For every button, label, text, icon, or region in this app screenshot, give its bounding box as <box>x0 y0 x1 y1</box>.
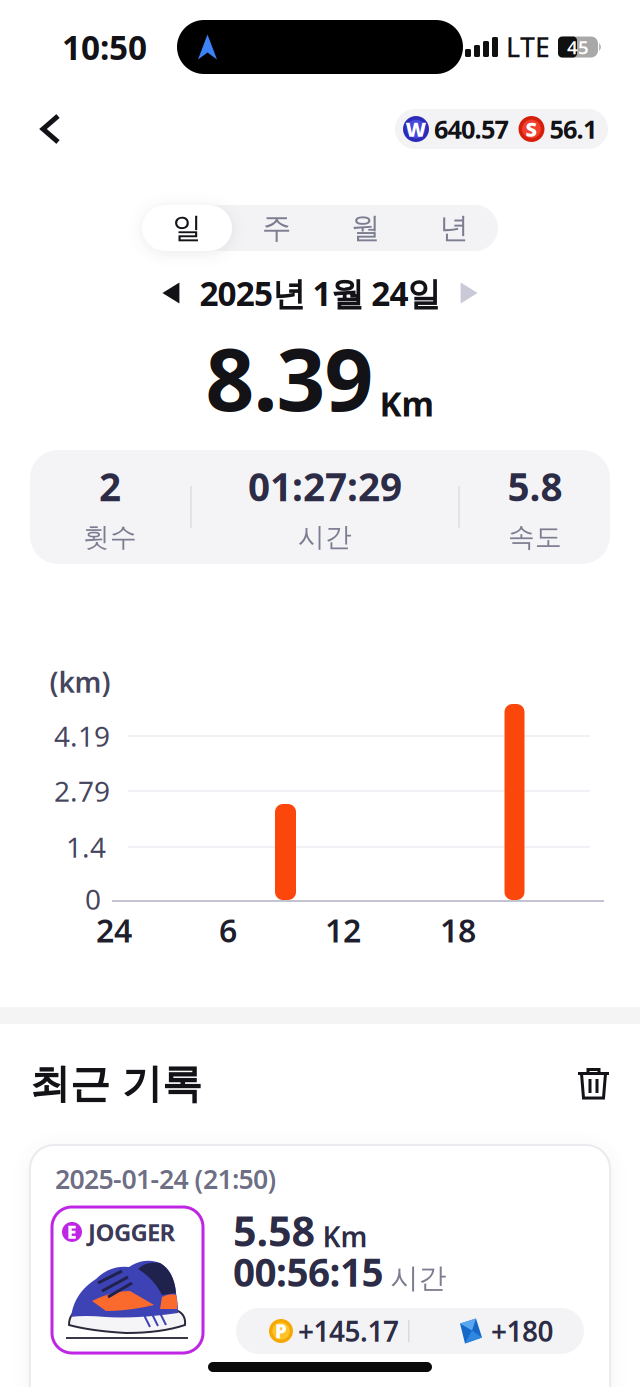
staticText: 2025-01-24 (21:50) <box>55 1161 276 1196</box>
button[interactable]: Wallet balance <box>395 109 608 149</box>
staticText: 6 <box>219 909 237 951</box>
button[interactable]: 년 <box>410 205 498 251</box>
staticText: 월 <box>351 210 380 246</box>
staticText: 00:56:15 <box>233 1246 383 1297</box>
staticText: 640.57 <box>434 112 508 146</box>
staticText: 12 <box>325 909 361 951</box>
staticText: 2.79 <box>54 772 110 810</box>
button[interactable]: 주 <box>232 205 321 251</box>
staticText: S <box>525 116 537 142</box>
staticText: 0 <box>85 880 101 918</box>
staticText: Km <box>322 1218 367 1255</box>
staticText: W <box>405 116 426 142</box>
staticText: 4.19 <box>54 717 110 755</box>
staticText: 45 <box>567 35 589 59</box>
staticText: Km <box>379 381 434 426</box>
button[interactable]: Back <box>0 114 82 144</box>
staticText: 시간 <box>390 1261 446 1295</box>
staticText: 2 <box>99 460 121 512</box>
staticText: (km) <box>49 663 110 701</box>
staticText: 최근 기록 <box>30 1059 202 1108</box>
staticText: 시간 <box>298 521 352 554</box>
staticText: 5.8 <box>507 460 562 512</box>
staticText: 18 <box>440 909 476 951</box>
staticText: +145.17 <box>298 1312 399 1350</box>
button[interactable]: Next day <box>461 282 478 303</box>
staticText: 횟수 <box>83 521 137 554</box>
staticText: 56.1 <box>549 112 597 146</box>
button[interactable]: 일 <box>142 205 232 251</box>
staticText: 년 <box>439 210 468 246</box>
staticText: 속도 <box>508 521 562 554</box>
button[interactable]: Previous day <box>162 282 179 303</box>
staticText: LTE <box>506 29 550 65</box>
button[interactable]: 월 <box>321 205 410 251</box>
staticText: E <box>67 1220 77 1243</box>
staticText: 5.58 <box>233 1203 315 1258</box>
staticText: 8.39 <box>205 321 373 435</box>
staticText: 주 <box>262 210 291 246</box>
staticText: JOGGER <box>88 1216 175 1248</box>
button[interactable]: Delete records <box>578 1068 640 1100</box>
staticText: 1.4 <box>66 828 106 866</box>
staticText: 01:27:29 <box>248 460 402 512</box>
staticText: P <box>275 1319 287 1343</box>
staticText: 24 <box>96 909 132 951</box>
staticText: +180 <box>491 1312 553 1350</box>
staticText: 일 <box>172 210 201 246</box>
staticText: 2025년 1월 24일 <box>199 271 441 315</box>
staticText: 10:50 <box>62 25 147 69</box>
button[interactable]: 2025-01-24 (21:50) <box>30 1145 610 1387</box>
